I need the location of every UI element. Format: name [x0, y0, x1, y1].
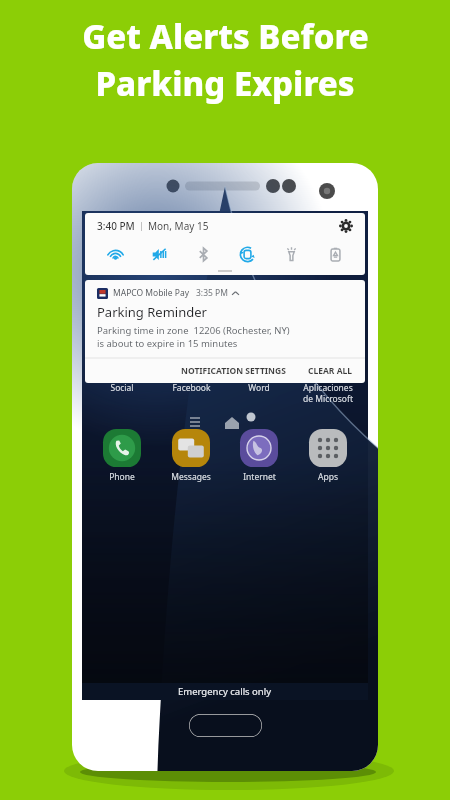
button[interactable]: Home — [189, 714, 262, 737]
staticText: Social — [110, 382, 134, 394]
button[interactable]: Aplicaciones de Microsoft — [295, 339, 361, 404]
staticText: Aplicaciones de Microsoft — [303, 382, 353, 404]
button[interactable]: Phone — [89, 428, 155, 483]
staticText: Word — [248, 382, 270, 394]
staticText: Get Alerts Before — [82, 14, 369, 59]
button[interactable]: Flashlight — [277, 240, 305, 268]
button[interactable]: Social — [89, 339, 155, 394]
button[interactable]: Sound off — [145, 240, 173, 268]
button[interactable]: Settings — [337, 217, 355, 235]
button[interactable]: CLEAR ALL — [300, 361, 361, 381]
staticText: Apps — [318, 471, 338, 483]
staticText: MAPCO Mobile Pay — [113, 287, 190, 299]
button[interactable]: NOTIFICATION SETTINGS — [173, 361, 294, 381]
button[interactable]: MAPCO Mobile Pay — [85, 280, 365, 358]
staticText: CLEAR ALL — [308, 365, 353, 377]
button[interactable]: Wi-Fi — [101, 240, 129, 268]
staticText: Messages — [171, 471, 211, 483]
button[interactable]: Facebook — [158, 339, 224, 394]
button[interactable]: Auto rotate — [233, 240, 261, 268]
button[interactable]: Bluetooth — [189, 240, 217, 268]
staticText: Parking time in zone 12206 (Rochester, N… — [97, 324, 290, 337]
staticText: Parking Reminder — [97, 303, 207, 321]
button[interactable]: Internet — [226, 428, 292, 483]
staticText: is about to expire in 15 minutes — [97, 337, 238, 350]
staticText: Facebook — [172, 382, 211, 394]
staticText: NOTIFICATION SETTINGS — [181, 365, 286, 377]
button[interactable]: Power saving — [321, 240, 349, 268]
staticText: Internet — [243, 471, 276, 483]
staticText: 3:40 PM — [97, 219, 135, 233]
staticText: Parking Expires — [95, 61, 355, 106]
staticText: 3:35 PM — [196, 287, 228, 299]
button[interactable]: Apps — [295, 428, 361, 483]
button[interactable]: Word — [226, 339, 292, 394]
button[interactable]: Messages — [158, 428, 224, 483]
staticText: Phone — [109, 471, 135, 483]
staticText: Emergency calls only — [178, 685, 272, 698]
staticText: Mon, May 15 — [148, 219, 209, 233]
